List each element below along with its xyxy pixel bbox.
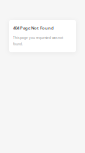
- staticText: 404 Page Not Found: [13, 25, 54, 31]
- staticText: found.: [13, 42, 23, 46]
- staticText: This page you requested was not: [13, 36, 63, 40]
